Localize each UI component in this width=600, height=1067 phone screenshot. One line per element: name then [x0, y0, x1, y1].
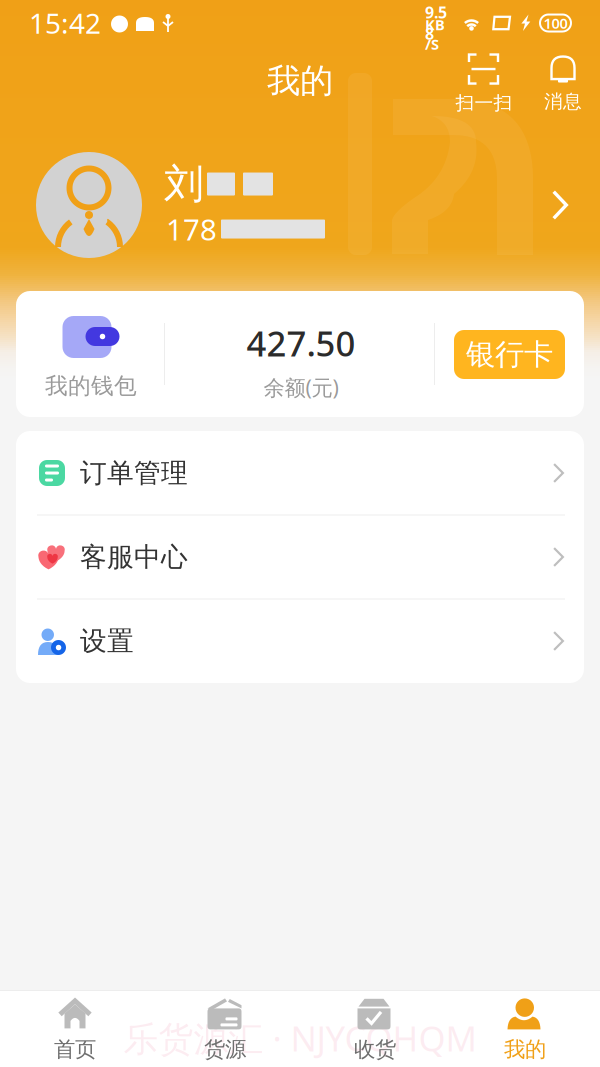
staticText: 100 — [543, 13, 567, 33]
staticText: 178 — [166, 209, 217, 248]
staticText: KB/S — [425, 15, 445, 54]
staticText: 收货 — [354, 1036, 396, 1063]
button[interactable]: 扫一扫 — [446, 53, 522, 115]
staticText: 15:42 — [29, 4, 101, 42]
button[interactable]: 首页 — [0, 990, 150, 1067]
button[interactable]: 客服中心 — [16, 515, 584, 599]
staticText: 余额(元) — [263, 373, 338, 401]
button[interactable]: 收货 — [300, 990, 450, 1067]
button[interactable]: 我的 — [450, 990, 600, 1067]
button[interactable]: 刘 — [0, 120, 600, 291]
staticText: 9.58 — [425, 2, 447, 44]
staticText: 我的 — [504, 1036, 546, 1063]
button[interactable]: 货源 — [150, 990, 300, 1067]
button[interactable]: 消息 — [525, 53, 600, 115]
button[interactable]: 银行卡 — [454, 330, 565, 379]
staticText: 我的 — [267, 60, 333, 101]
staticText: 货源 — [204, 1036, 246, 1063]
staticText: 我的钱包 — [45, 372, 137, 400]
staticText: 乐货源汇 · NJYCQHQM — [123, 1015, 476, 1061]
staticText: 消息 — [544, 90, 582, 113]
staticText: 客服中心 — [80, 541, 188, 573]
staticText: 银行卡 — [466, 336, 553, 372]
button[interactable]: 我的钱包 — [16, 291, 166, 417]
staticText: 设置 — [80, 625, 134, 657]
staticText: 订单管理 — [80, 457, 188, 489]
staticText: 刘 — [164, 159, 204, 208]
button[interactable]: 设置 — [16, 599, 584, 683]
staticText: 扫一扫 — [455, 91, 512, 114]
button[interactable]: 订单管理 — [16, 431, 584, 515]
staticText: 首页 — [54, 1036, 96, 1063]
staticText: 427.50 — [246, 320, 355, 366]
